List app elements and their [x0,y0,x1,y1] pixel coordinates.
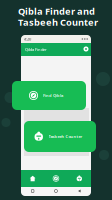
button[interactable]: Tasbeeh Counter [24,121,96,152]
button[interactable]: Home [21,170,44,187]
staticText: 4:20 [24,36,31,42]
staticText: Find Qibla [43,93,63,98]
staticText: Tasbeeh Counter [18,16,98,28]
staticText: Tasbeeh Counter [48,134,82,139]
button[interactable]: Home [44,187,68,195]
staticText: Qibla Finder and [18,5,95,17]
staticText: Qibla Finder [25,47,47,52]
button[interactable]: Recents [21,187,44,195]
button[interactable]: Back [68,187,91,195]
button[interactable]: Qibla [44,170,68,187]
button[interactable]: Tasbeeh [68,170,91,187]
button[interactable]: Settings [83,46,89,52]
button[interactable]: Find Qibla [12,81,86,110]
